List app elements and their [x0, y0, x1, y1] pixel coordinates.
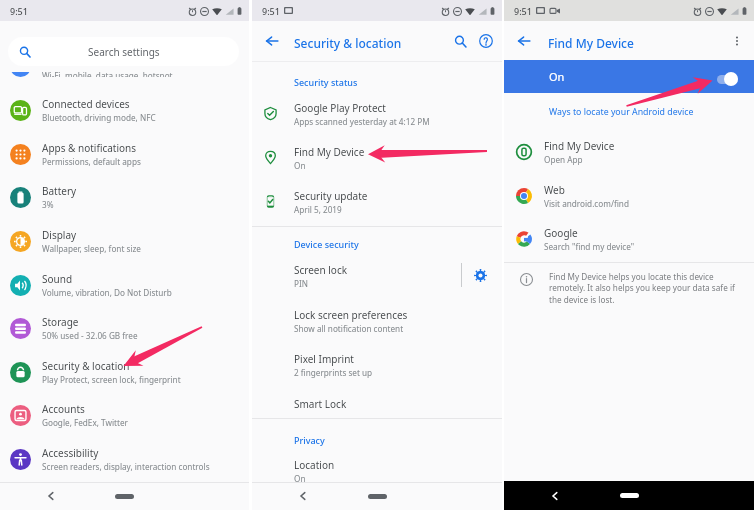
button[interactable]: More options [724, 28, 750, 54]
button[interactable]: Home [115, 494, 134, 499]
button[interactable]: Back [511, 28, 537, 54]
staticText: Find My Device helps you locate this dev… [549, 271, 740, 306]
staticText: Pixel Imprint [294, 352, 354, 366]
staticText: Apps scanned yesterday at 4:12 PM [294, 116, 430, 127]
staticText: Accounts [42, 402, 85, 416]
staticText: 9:51 [514, 5, 532, 17]
staticText: Permissions, default apps [42, 156, 141, 167]
staticText: Google, FedEx, Twitter [42, 417, 128, 428]
staticText: 9:51 [10, 5, 28, 17]
button[interactable]: Security & location [0, 350, 249, 394]
staticText: Visit android.com/find [544, 198, 629, 209]
staticText: On [294, 473, 306, 484]
button[interactable]: Back [550, 491, 560, 501]
button[interactable]: Screen lock settings [469, 264, 491, 286]
staticText: Device security [294, 238, 359, 250]
staticText: Security update [294, 189, 368, 203]
button[interactable]: Search [447, 28, 473, 54]
staticText: Find My Device [548, 35, 634, 51]
staticText: PIN [294, 278, 308, 289]
button[interactable]: Smart Lock [252, 382, 502, 425]
staticText: Wi-Fi, mobile, data usage, hotspot [42, 70, 173, 77]
button[interactable]: Find My Device [252, 136, 502, 179]
staticText: Wallpaper, sleep, font size [42, 243, 141, 254]
button[interactable]: Back [259, 28, 285, 54]
button[interactable]: Back [46, 491, 56, 501]
staticText: Connected devices [42, 97, 130, 111]
staticText: Screen lock [294, 263, 348, 277]
button[interactable]: Web [504, 174, 754, 217]
button[interactable]: Find My Device [504, 130, 754, 173]
button[interactable]: Sound [0, 263, 249, 307]
staticText: Open App [544, 154, 583, 165]
staticText: On [549, 69, 565, 84]
staticText: Web [544, 183, 565, 197]
button[interactable]: Google [504, 217, 754, 260]
button[interactable]: Apps & notifications [0, 132, 249, 176]
button[interactable]: Ways to locate your Android device [549, 106, 694, 118]
button[interactable]: Display [0, 219, 249, 263]
staticText: Storage [42, 315, 79, 329]
button[interactable]: Security update [252, 180, 502, 223]
staticText: On [294, 160, 306, 171]
staticText: Search "find my device" [544, 241, 635, 252]
staticText: Screen readers, display, interaction con… [42, 461, 210, 472]
staticText: Bluetooth, driving mode, NFC [42, 112, 156, 123]
staticText: Volume, vibration, Do Not Disturb [42, 287, 172, 298]
staticText: Lock screen preferences [294, 308, 408, 322]
button[interactable]: Pixel Imprint [252, 343, 502, 386]
button[interactable]: Accessibility [0, 437, 249, 481]
button[interactable]: Search settings [8, 37, 239, 66]
staticText: Google Play Protect [294, 101, 386, 115]
staticText: April 5, 2019 [294, 204, 342, 215]
staticText: Location [294, 458, 335, 472]
button[interactable]: Lock screen preferences [252, 299, 502, 342]
button[interactable]: Screen lock [252, 254, 502, 297]
staticText: 9:51 [262, 5, 280, 17]
button[interactable]: Storage [0, 306, 249, 350]
staticText: Find My Device [294, 145, 365, 159]
staticText: Security & location [42, 359, 130, 373]
button[interactable]: Battery [0, 175, 249, 219]
staticText: Show all notification content [294, 323, 404, 334]
button[interactable]: Home [620, 493, 639, 498]
staticText: 3% [42, 199, 54, 210]
button[interactable]: Home [368, 494, 387, 499]
button[interactable]: On [504, 60, 754, 93]
staticText: 2 fingerprints set up [294, 367, 373, 378]
staticText: Sound [42, 272, 73, 286]
staticText: Search settings [88, 45, 160, 59]
button[interactable]: Back [298, 491, 308, 501]
button[interactable]: Accounts [0, 393, 249, 437]
button[interactable]: Connected devices [0, 88, 249, 132]
button[interactable]: Google Play Protect [252, 92, 502, 135]
staticText: Battery [42, 184, 77, 198]
staticText: Security & location [294, 35, 402, 51]
staticText: Accessibility [42, 446, 99, 460]
staticText: 50% used - 32.06 GB free [42, 330, 138, 341]
staticText: Find My Device [544, 139, 615, 153]
staticText: Security status [294, 76, 358, 88]
staticText: Smart Lock [294, 397, 347, 411]
staticText: Privacy [294, 434, 325, 446]
staticText: Play Protect, screen lock, fingerprint [42, 374, 181, 385]
staticText: Display [42, 228, 77, 242]
staticText: Apps & notifications [42, 141, 137, 155]
staticText: Google [544, 226, 578, 240]
button[interactable]: Location [252, 449, 502, 492]
button[interactable]: Help [473, 28, 499, 54]
